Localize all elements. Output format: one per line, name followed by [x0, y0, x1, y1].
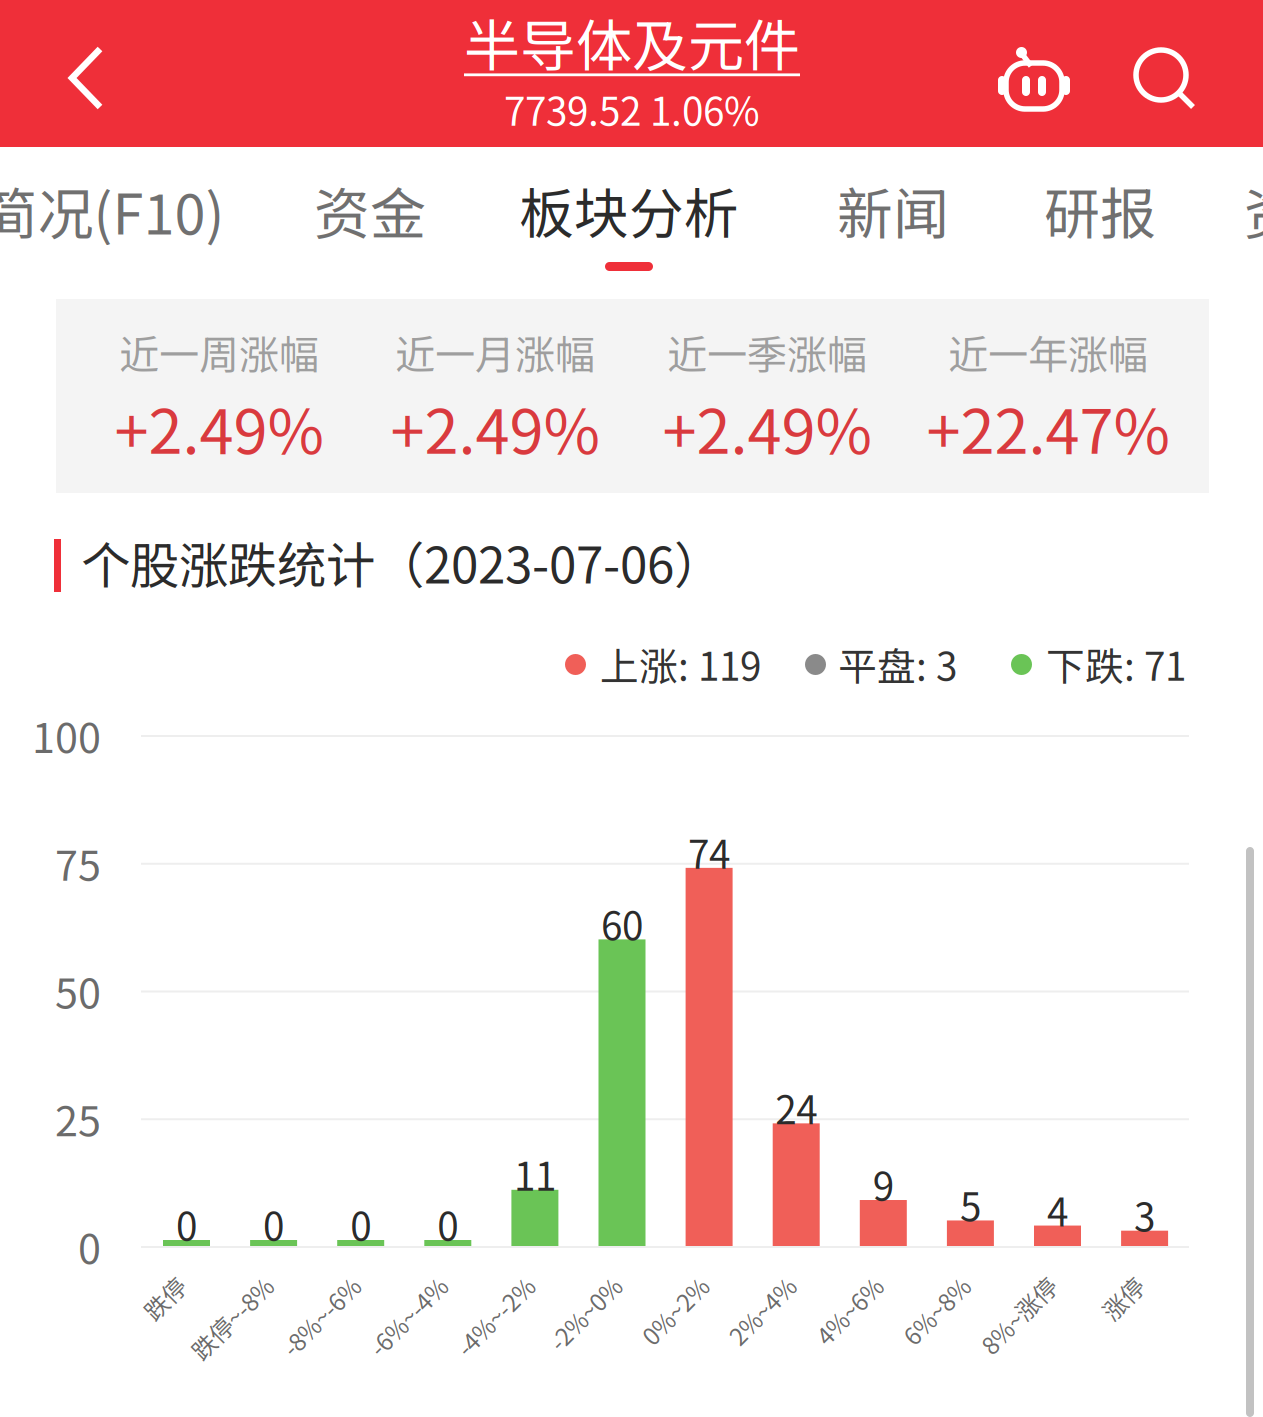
staticText: 25	[55, 1088, 101, 1148]
staticText: 100	[32, 705, 101, 765]
staticText: 跌停	[119, 1270, 167, 1304]
staticText: 5	[960, 1176, 981, 1232]
staticText: 跌停~-8%	[151, 1270, 255, 1304]
staticText: 4	[1047, 1182, 1068, 1238]
staticText: 涨停	[1078, 1270, 1126, 1304]
staticText: +22.47%	[926, 383, 1169, 471]
staticText: 7739.52 1.06%	[504, 81, 760, 137]
staticText: 近一周涨幅	[119, 323, 319, 381]
staticText: 近一月涨幅	[395, 323, 595, 381]
staticText: 50	[55, 961, 101, 1020]
button[interactable]: 研报	[0, 0, 1263, 1417]
staticText: 0	[78, 1216, 101, 1276]
staticText: 半导体及元件	[464, 1, 800, 83]
staticText: 3	[1134, 1187, 1155, 1243]
staticText: +2.49%	[662, 383, 871, 471]
staticText: 24	[775, 1079, 817, 1135]
staticText: 近一季涨幅	[667, 323, 867, 381]
staticText: 6%~8%	[868, 1270, 951, 1304]
staticText: 0	[263, 1196, 284, 1252]
button[interactable]: 板块分析	[0, 0, 1263, 1417]
staticText: 60	[601, 895, 643, 951]
staticText: 资金	[314, 169, 426, 251]
staticText: -8%~-6%	[243, 1270, 342, 1304]
staticText: 9	[873, 1156, 894, 1212]
staticText: +2.49%	[114, 383, 323, 471]
button[interactable]: 资讯	[0, 0, 1263, 1417]
staticText: 新闻	[837, 169, 949, 251]
staticText: 个股涨跌统计（2023-07-06）	[81, 526, 723, 598]
staticText: 简况(F10)	[0, 169, 224, 251]
staticText: 8%~涨停	[942, 1270, 1038, 1304]
staticText: -6%~-4%	[330, 1270, 429, 1304]
staticText: 下跌: 71	[1046, 636, 1186, 692]
staticText: -2%~0%	[512, 1270, 603, 1304]
staticText: 0%~2%	[607, 1270, 690, 1304]
staticText: 近一年涨幅	[948, 323, 1148, 381]
staticText: 75	[55, 833, 101, 893]
staticText: 2%~4%	[694, 1270, 777, 1304]
button[interactable]: 资金	[0, 0, 1263, 1417]
button[interactable]: Back	[66, 43, 196, 113]
staticText: 上涨: 119	[600, 636, 761, 692]
staticText: 研报	[1044, 169, 1156, 251]
staticText: 板块分析	[519, 170, 739, 250]
staticText: 0	[176, 1196, 197, 1252]
button[interactable]: 新闻	[0, 0, 1263, 1417]
staticText: 平盘: 3	[838, 636, 957, 692]
button[interactable]: Search	[1133, 44, 1229, 114]
staticText: 74	[688, 824, 730, 880]
staticText: 0	[350, 1196, 371, 1252]
staticText: 资讯	[1244, 169, 1263, 251]
staticText: -4%~-2%	[417, 1270, 516, 1304]
button[interactable]: 简况(F10)	[0, 0, 1263, 1417]
button[interactable]: AI assistant	[997, 43, 1097, 113]
staticText: 4%~6%	[781, 1270, 864, 1304]
staticText: +2.49%	[390, 383, 599, 471]
staticText: 11	[514, 1146, 556, 1202]
staticText: 0	[437, 1196, 458, 1252]
